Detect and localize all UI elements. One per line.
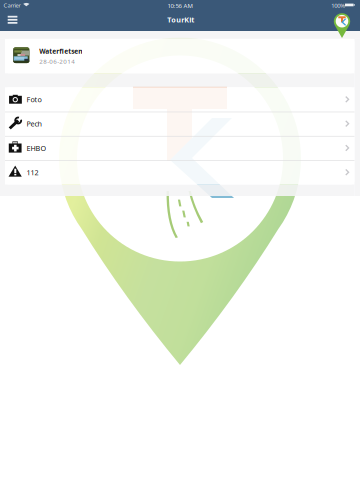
button[interactable]: Waterfietsen xyxy=(5,39,354,73)
button[interactable]: Foto xyxy=(5,87,354,112)
staticText: 112 xyxy=(27,167,39,177)
button[interactable]: Menu xyxy=(0,9,26,31)
button[interactable]: TourKit xyxy=(0,0,360,480)
button[interactable]: Pech xyxy=(5,112,354,136)
staticText: 28-06-2014 xyxy=(39,57,75,66)
staticText: Foto xyxy=(27,95,42,104)
staticText: Pech xyxy=(27,119,42,129)
staticText: Carrier xyxy=(3,1,20,9)
staticText: TourKit xyxy=(167,15,194,25)
staticText: Waterfietsen xyxy=(39,47,82,56)
staticText: EHBO xyxy=(27,143,47,153)
button[interactable]: 112 xyxy=(5,160,354,184)
staticText: 10:56 AM xyxy=(168,1,193,10)
staticText: 100% xyxy=(331,1,345,9)
button[interactable]: EHBO xyxy=(5,136,354,160)
